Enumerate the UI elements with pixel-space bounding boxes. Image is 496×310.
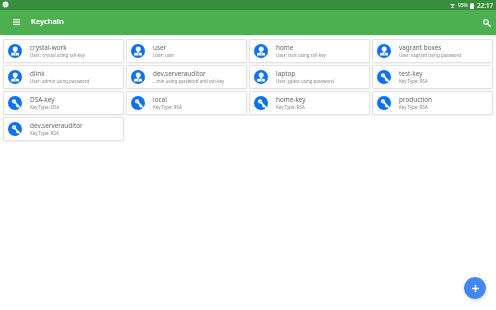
button[interactable]: DSA-key bbox=[3, 91, 124, 115]
staticText: local bbox=[153, 95, 167, 104]
button[interactable]: test-key bbox=[372, 65, 493, 89]
button[interactable]: home bbox=[249, 39, 370, 63]
staticText: DSA-key bbox=[30, 95, 55, 104]
button[interactable]: Add bbox=[464, 277, 486, 299]
staticText: Key Type: RSA bbox=[399, 78, 428, 84]
staticText: Key Type: RSA bbox=[399, 104, 428, 110]
staticText: laptop bbox=[276, 69, 296, 78]
button[interactable]: laptop bbox=[249, 65, 370, 89]
staticText: dev.serverauditor bbox=[30, 121, 83, 130]
staticText: Key Type: RSA bbox=[30, 130, 59, 136]
button[interactable]: dlink bbox=[3, 65, 124, 89]
button[interactable]: dev.serverauditor bbox=[126, 65, 247, 89]
button[interactable]: production bbox=[372, 91, 493, 115]
button[interactable]: vagrant boxes bbox=[372, 39, 493, 63]
staticText: user bbox=[153, 43, 167, 52]
staticText: dev.serverauditor bbox=[153, 69, 206, 78]
staticText: User: root using ssh-key bbox=[276, 52, 327, 58]
button[interactable]: crystal-work bbox=[3, 39, 124, 63]
staticText: vagrant boxes bbox=[399, 43, 442, 52]
staticText: crystal-work bbox=[30, 43, 67, 52]
button[interactable]: local bbox=[126, 91, 247, 115]
staticText: User: user bbox=[153, 52, 175, 58]
button[interactable]: user bbox=[126, 39, 247, 63]
staticText: Key Type: RSA bbox=[153, 104, 182, 110]
staticText: dlink bbox=[30, 69, 45, 78]
staticText: User: admin using password bbox=[30, 78, 90, 84]
button[interactable]: home-key bbox=[249, 91, 370, 115]
staticText: home-key bbox=[276, 95, 306, 104]
staticText: User: vagrant using password bbox=[399, 52, 462, 58]
staticText: 22:17 bbox=[477, 1, 494, 10]
staticText: Keychain bbox=[31, 16, 64, 26]
staticText: test-key bbox=[399, 69, 423, 78]
staticText: User: crystal using ssh-key bbox=[30, 52, 85, 58]
staticText: 95% bbox=[458, 2, 468, 9]
button[interactable]: dev.serverauditor bbox=[3, 117, 124, 141]
button[interactable]: Open navigation menu bbox=[6, 10, 26, 34]
staticText: ...min using password and ssh-key bbox=[153, 78, 225, 84]
staticText: home bbox=[276, 43, 294, 52]
button[interactable]: Search bbox=[477, 10, 496, 35]
staticText: User: guest using password bbox=[276, 78, 334, 84]
staticText: Key Type: DSA bbox=[30, 104, 60, 110]
staticText: production bbox=[399, 95, 433, 104]
staticText: Key Type: RSA bbox=[276, 104, 305, 110]
